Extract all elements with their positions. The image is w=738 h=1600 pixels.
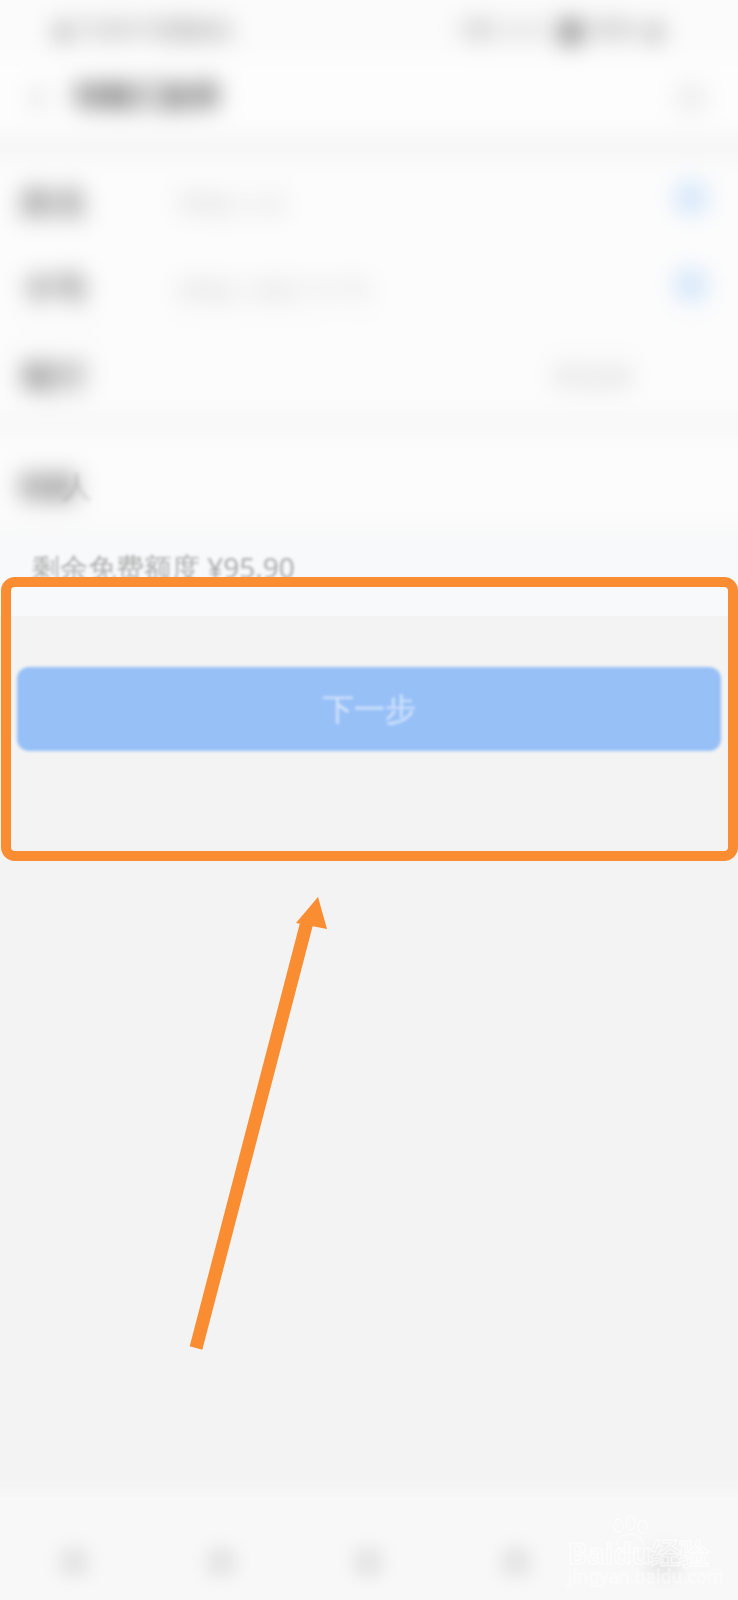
staticText: 银行: [21, 356, 87, 398]
staticText: jingyan.baidu.com: [568, 1564, 724, 1589]
button[interactable]: Scan bank card: [674, 268, 708, 302]
staticText: Baidu经验: [568, 1533, 709, 1573]
button[interactable]: 下一步: [17, 667, 721, 751]
staticText: 转账汇款录: [75, 78, 220, 115]
staticText: 人: [62, 468, 92, 506]
staticText: 下一步: [323, 690, 416, 729]
staticText: 剩余免费额度 ¥95.90: [32, 548, 295, 586]
staticText: 收款: [19, 468, 79, 506]
button[interactable]: Select contact: [674, 181, 708, 215]
button[interactable]: Orders: [442, 1506, 590, 1600]
staticText: 姓名: [21, 182, 87, 224]
staticText: HD ıl ıl ▇ 85% ▮: [462, 13, 662, 44]
staticText: ▮ 13:09 中国移动: [56, 13, 232, 44]
staticText: 卡号: [21, 269, 87, 311]
